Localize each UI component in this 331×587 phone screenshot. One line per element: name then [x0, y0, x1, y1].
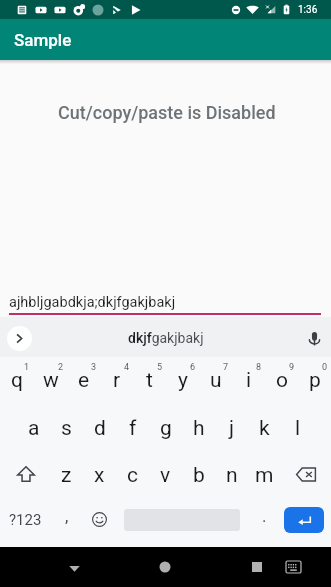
staticText: 0	[322, 362, 328, 373]
button[interactable]: i	[232, 357, 265, 404]
button[interactable]: k	[248, 404, 281, 451]
button[interactable]: l	[281, 404, 314, 451]
staticText: y	[178, 368, 188, 393]
staticText: x	[94, 463, 105, 488]
staticText: g	[160, 416, 172, 441]
button[interactable]: g	[149, 404, 182, 451]
staticText: a	[28, 416, 40, 441]
button[interactable]: d	[83, 404, 116, 451]
staticText: q	[11, 368, 23, 393]
staticText: t	[146, 368, 153, 393]
button[interactable]: f	[116, 404, 149, 451]
button[interactable]: p	[298, 357, 331, 404]
staticText: ajhbljgabdkja;dkjfgakjbakj	[9, 294, 176, 311]
staticText: p	[309, 368, 321, 393]
button[interactable]: b	[182, 451, 215, 498]
staticText: k	[259, 416, 270, 441]
staticText: ,	[65, 506, 69, 526]
button[interactable]: z	[50, 451, 83, 498]
staticText: v	[160, 463, 171, 488]
button[interactable]: n	[215, 451, 248, 498]
button[interactable]: ,	[51, 498, 83, 542]
staticText: 7	[223, 362, 229, 373]
button[interactable]: h	[182, 404, 215, 451]
staticText: Cut/copy/paste is Disabled	[58, 102, 276, 123]
staticText: 1:36	[298, 4, 318, 16]
staticText: e	[78, 368, 90, 393]
staticText: m	[255, 463, 274, 488]
button[interactable]: ?123	[0, 498, 51, 542]
staticText: 9	[289, 362, 295, 373]
staticText: r	[113, 368, 121, 393]
staticText: ?123	[9, 511, 42, 529]
button[interactable]: v	[149, 451, 182, 498]
staticText: .	[262, 506, 267, 526]
button[interactable]: a	[17, 404, 50, 451]
button[interactable]: e	[67, 357, 100, 404]
button[interactable]: q	[0, 357, 34, 404]
staticText: dkjfgakjbakj	[128, 330, 204, 346]
button[interactable]: r	[100, 357, 133, 404]
button[interactable]: More suggestions	[7, 326, 32, 351]
button[interactable]: y	[166, 357, 199, 404]
button[interactable]: Shift	[0, 451, 50, 498]
staticText: 1	[24, 362, 30, 373]
button[interactable]: Switch keyboard	[279, 547, 308, 587]
staticText: 6	[190, 362, 196, 373]
button[interactable]: .	[248, 498, 280, 542]
staticText: w	[43, 368, 59, 393]
button[interactable]: o	[265, 357, 298, 404]
button[interactable]: Enter	[284, 507, 324, 533]
staticText: s	[61, 416, 72, 441]
button[interactable]: Back	[51, 547, 97, 587]
staticText: 5	[157, 362, 163, 373]
staticText: 8	[256, 362, 262, 373]
staticText: b	[193, 463, 205, 488]
button[interactable]: t	[133, 357, 166, 404]
staticText: i	[246, 368, 252, 393]
button[interactable]: x	[83, 451, 116, 498]
button[interactable]: Home	[142, 547, 188, 587]
staticText: u	[210, 368, 222, 393]
button[interactable]: Voice input	[307, 331, 322, 346]
button[interactable]: Emoji	[83, 498, 115, 542]
button[interactable]: w	[34, 357, 67, 404]
staticText: d	[94, 416, 106, 441]
staticText: c	[127, 463, 138, 488]
staticText: Sample	[14, 30, 72, 50]
staticText: f	[129, 416, 137, 441]
staticText: l	[295, 416, 301, 441]
button[interactable]: c	[116, 451, 149, 498]
staticText: 3	[91, 362, 97, 373]
button[interactable]: s	[50, 404, 83, 451]
staticText: n	[226, 463, 238, 488]
button[interactable]	[115, 498, 248, 542]
staticText: z	[61, 463, 72, 488]
staticText: o	[276, 368, 288, 393]
button[interactable]: j	[215, 404, 248, 451]
staticText: j	[229, 416, 235, 441]
button[interactable]: Backspace	[281, 451, 331, 498]
button[interactable]: u	[199, 357, 232, 404]
button[interactable]: Recents	[234, 547, 279, 587]
staticText: h	[193, 416, 205, 441]
staticText: 2	[58, 362, 64, 373]
staticText: 4	[124, 362, 130, 373]
button[interactable]: m	[248, 451, 281, 498]
